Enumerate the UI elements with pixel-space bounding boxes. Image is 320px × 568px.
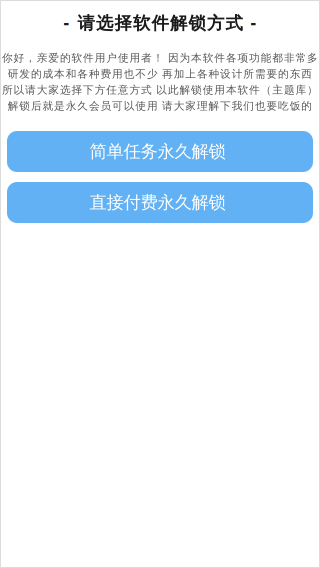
staticText: 直接付费永久解锁	[89, 192, 225, 213]
staticText: 解锁后就是永久会员可以使用 请大家理解下我们也要吃饭的	[8, 99, 312, 112]
staticText: 所以请大家选择下方任意方式 以此解锁使用本软件（主题库）	[2, 83, 318, 96]
staticText: 你好，亲爱的软件用户使用者！ 因为本软件各项功能都非常多	[2, 51, 318, 64]
staticText: 研发的成本和各种费用也不少 再加上各种设计所需要的东西	[8, 67, 312, 80]
button[interactable]: 直接付费永久解锁	[7, 182, 313, 223]
staticText: - 请选择软件解锁方式 -	[63, 11, 256, 34]
button[interactable]: 简单任务永久解锁	[7, 131, 313, 172]
staticText: 简单任务永久解锁	[89, 141, 225, 162]
